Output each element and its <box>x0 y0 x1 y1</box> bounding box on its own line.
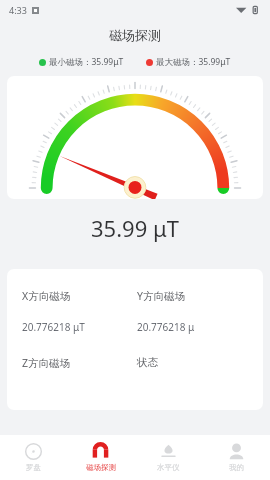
staticText: 水平仪 <box>157 463 180 472</box>
staticText: 状态 <box>137 356 158 369</box>
staticText: 最小磁场：35.99μT <box>49 56 124 68</box>
staticText: 4:33 <box>9 4 27 16</box>
staticText: 35.99 μT <box>91 213 179 243</box>
staticText: 我的 <box>229 463 244 472</box>
button[interactable]: 我的 <box>202 435 270 480</box>
staticText: Z方向磁场 <box>22 356 71 370</box>
staticText: 罗盘 <box>26 463 41 472</box>
staticText: Y方向磁场 <box>137 289 185 303</box>
staticText: 20.776218 μT <box>22 320 85 334</box>
staticText: 最大磁场：35.99μT <box>156 56 231 68</box>
button[interactable]: 磁场探测 <box>67 435 134 480</box>
button[interactable]: 罗盘 <box>0 435 67 480</box>
staticText: X方向磁场 <box>22 289 71 303</box>
staticText: 20.776218 μ <box>137 320 195 334</box>
staticText: 磁场探测 <box>86 463 116 472</box>
staticText: 磁场探测 <box>109 27 161 43</box>
button[interactable]: 水平仪 <box>134 435 202 480</box>
